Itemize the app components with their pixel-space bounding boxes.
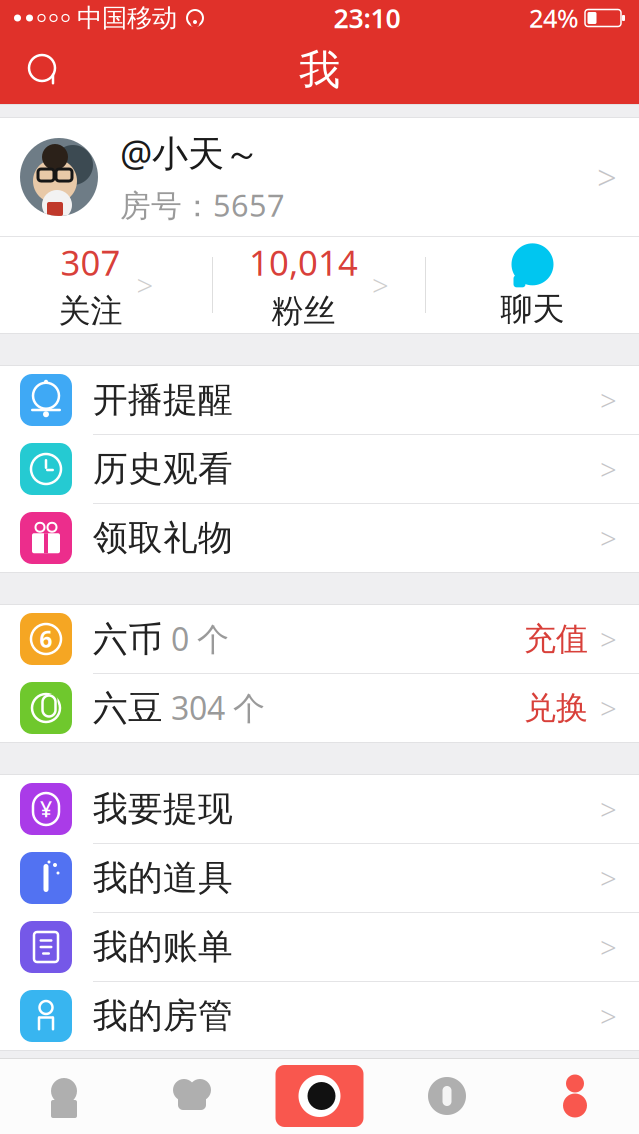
button[interactable]: Profile xyxy=(511,1058,639,1134)
staticText: 24% xyxy=(529,1,579,35)
staticText: 六豆 xyxy=(93,687,163,730)
staticText: > xyxy=(600,688,617,727)
staticText: 23:10 xyxy=(333,0,400,36)
staticText: 10,014 xyxy=(249,239,358,285)
staticText: 我的账单 xyxy=(93,926,233,968)
staticText: > xyxy=(600,858,617,897)
button[interactable]: 开播提醒 xyxy=(0,366,639,435)
staticText: 中国移动 xyxy=(77,2,177,33)
staticText: > xyxy=(600,619,617,658)
staticText: 粉丝 xyxy=(271,291,335,331)
staticText: > xyxy=(600,789,617,828)
staticText: 我的房管 xyxy=(93,995,233,1037)
staticText: > xyxy=(136,265,153,304)
staticText: > xyxy=(600,380,617,419)
button[interactable]: 10,014 xyxy=(213,237,425,333)
staticText: > xyxy=(372,265,389,304)
staticText: ¥ xyxy=(40,795,52,823)
staticText: > xyxy=(597,154,617,200)
staticText: > xyxy=(600,518,617,557)
staticText: 关注 xyxy=(58,291,122,331)
staticText: 充值 xyxy=(524,619,588,659)
staticText: > xyxy=(600,927,617,966)
button[interactable]: Go live xyxy=(256,1058,383,1134)
button[interactable]: 我的道具 xyxy=(0,844,639,913)
staticText: 房号：5657 xyxy=(120,184,285,225)
staticText: 我要提现 xyxy=(93,788,233,830)
button[interactable]: 领取礼物 xyxy=(0,504,639,572)
staticText: 领取礼物 xyxy=(93,517,233,559)
staticText: 307 xyxy=(60,239,120,285)
button[interactable]: Discover xyxy=(383,1058,511,1134)
staticText: > xyxy=(600,449,617,488)
button[interactable]: 307 xyxy=(0,237,212,333)
button[interactable]: 我的房管 xyxy=(0,982,639,1050)
staticText: 我的道具 xyxy=(93,857,233,899)
staticText: 兑换 xyxy=(524,688,588,728)
button[interactable]: 历史观看 xyxy=(0,435,639,504)
staticText: > xyxy=(600,996,617,1035)
button[interactable]: 六豆 xyxy=(0,674,639,742)
staticText: 我 xyxy=(299,45,340,95)
staticText: 0 个 xyxy=(171,617,229,660)
button[interactable]: 我的账单 xyxy=(0,913,639,982)
button[interactable]: ¥ xyxy=(0,775,639,844)
staticText: 6 xyxy=(39,624,52,654)
button[interactable]: Favorites xyxy=(128,1058,256,1134)
staticText: @小天～ xyxy=(120,129,260,176)
button[interactable]: Home xyxy=(0,1058,128,1134)
staticText: 聊天 xyxy=(500,289,564,329)
button[interactable]: 聊天 xyxy=(426,237,639,333)
button[interactable]: 6 xyxy=(0,605,639,674)
button[interactable]: Search xyxy=(18,44,70,96)
staticText: 开播提醒 xyxy=(93,379,233,421)
staticText: 历史观看 xyxy=(93,448,233,490)
button[interactable]: @小天～ xyxy=(0,118,639,236)
staticText: 304 个 xyxy=(171,686,265,729)
staticText: 六币 xyxy=(93,618,163,661)
